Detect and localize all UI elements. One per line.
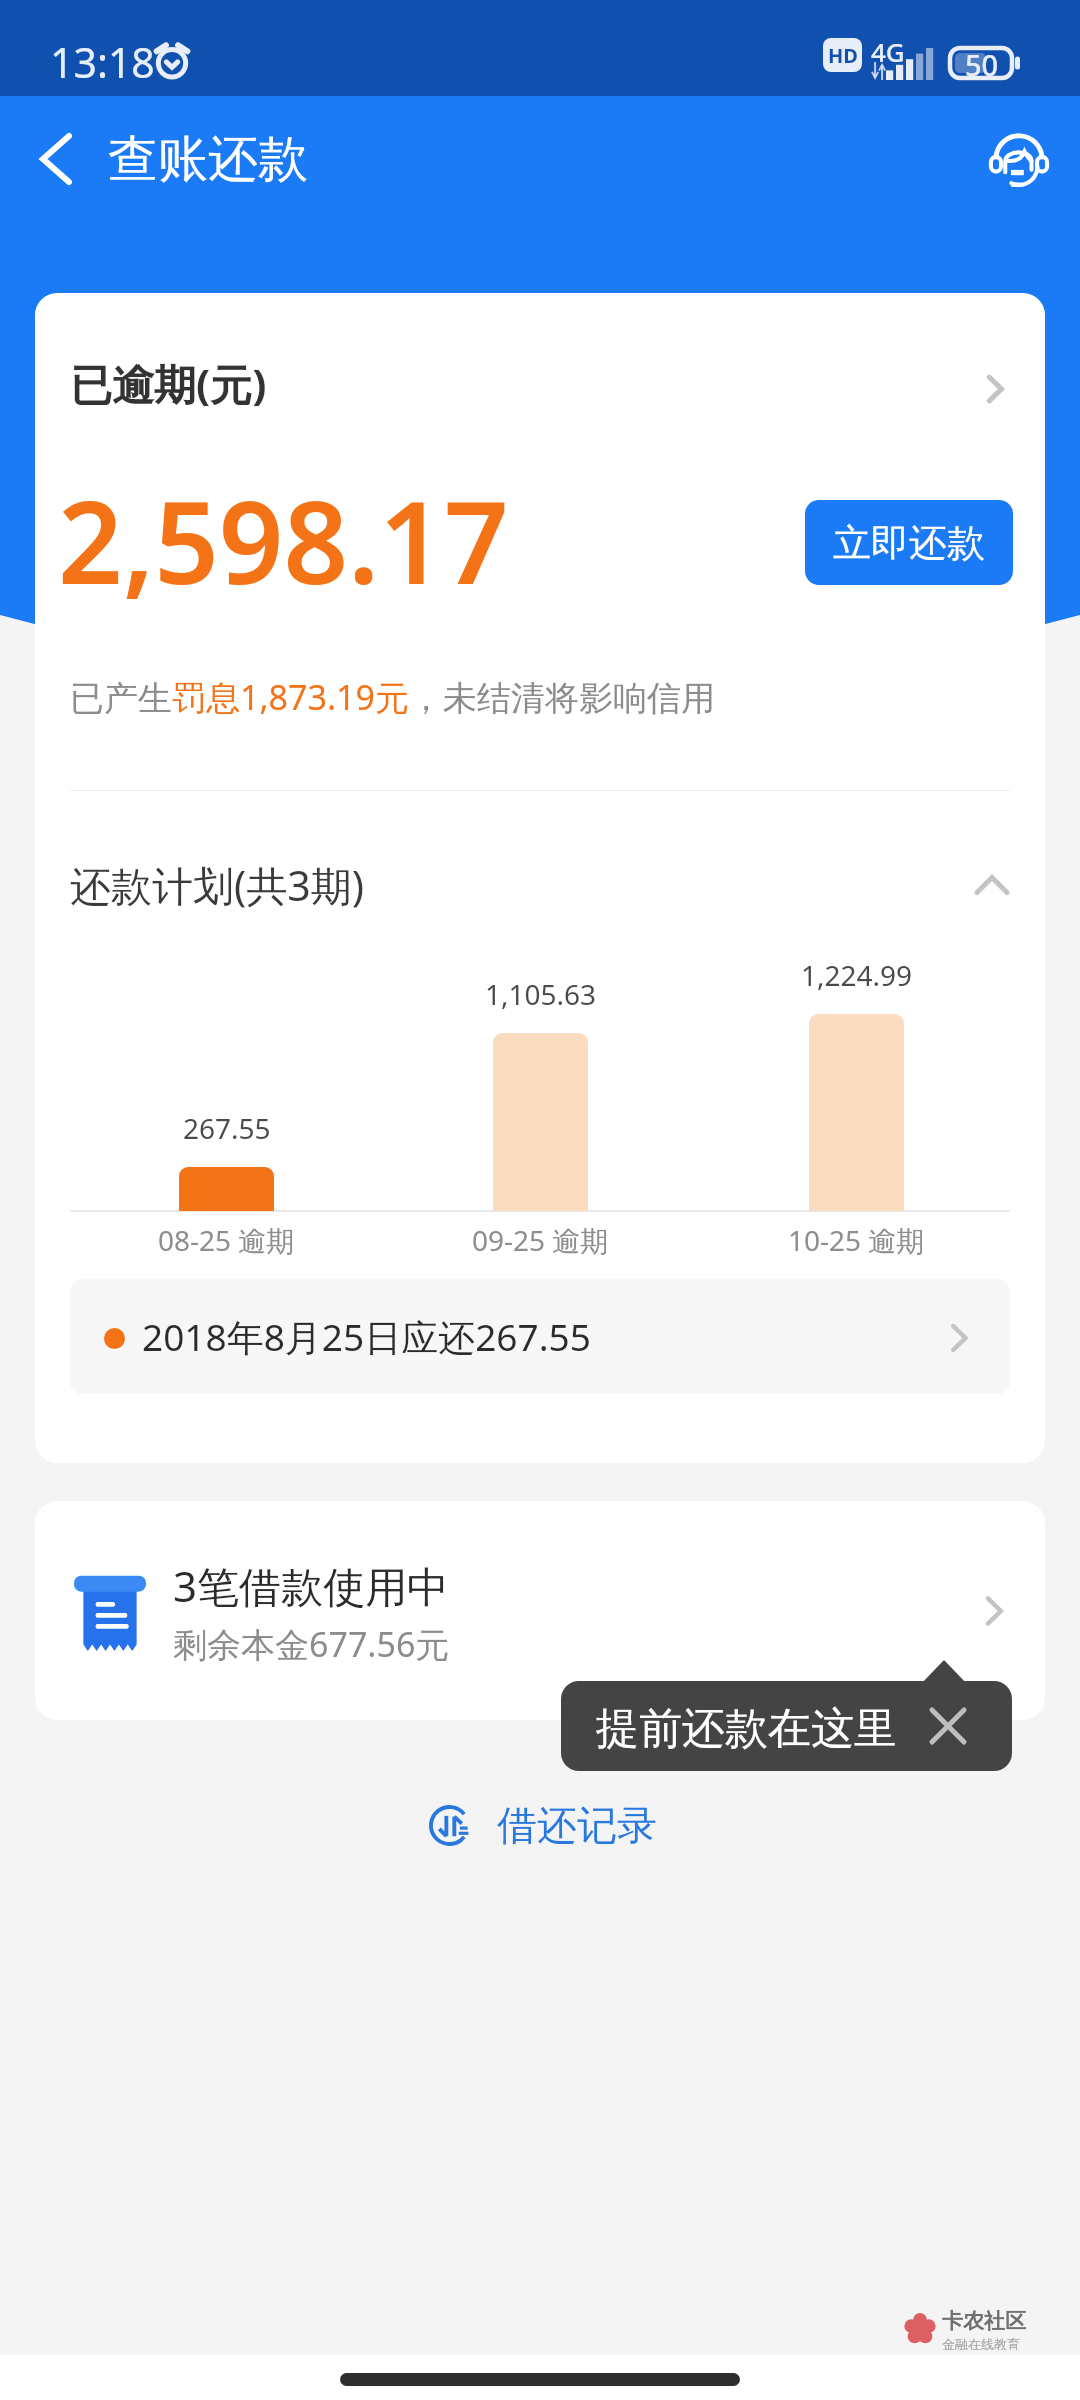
staticText: 立即还款	[833, 519, 985, 567]
staticText: 金融在线教育	[942, 2336, 1020, 2350]
button[interactable]: 立即还款	[805, 500, 1013, 585]
button[interactable]: 借还记录	[429, 1795, 659, 1855]
button[interactable]: Close	[923, 1701, 973, 1751]
staticText: HD	[828, 42, 858, 69]
staticText: 提前还款在这里	[596, 1702, 897, 1756]
button[interactable]: Back	[20, 114, 110, 204]
staticText: 3笔借款使用中	[173, 1557, 450, 1614]
staticText: 1,224.99	[801, 956, 913, 994]
staticText: 剩余本金677.56元	[173, 1621, 450, 1667]
staticText: 已产生罚息1,873.19元，未结清将影响信用	[70, 674, 715, 720]
staticText: 卡农社区	[942, 2308, 1026, 2334]
button[interactable]: Customer service	[987, 130, 1051, 194]
staticText: 09-25 逾期	[472, 1221, 609, 1259]
staticText: 查账还款	[108, 128, 308, 191]
staticText: 50	[965, 45, 999, 84]
button[interactable]: 已逾期(元)	[35, 293, 1045, 423]
staticText: 1,105.63	[485, 975, 597, 1013]
button[interactable]: 3笔借款使用中	[35, 1501, 1045, 1720]
staticText: 借还记录	[497, 1800, 657, 1850]
staticText: 267.55	[183, 1109, 271, 1147]
button[interactable]: 还款计划(共3期)	[35, 830, 1045, 940]
staticText: 10-25 逾期	[788, 1221, 925, 1259]
staticText: 08-25 逾期	[158, 1221, 295, 1259]
staticText: 还款计划(共3期)	[70, 857, 365, 913]
button[interactable]: 2018年8月25日应还267.55	[70, 1279, 1010, 1394]
staticText: 2,598.17	[58, 463, 509, 617]
staticText: 已逾期(元)	[70, 355, 267, 412]
staticText: 4G	[871, 34, 905, 69]
staticText: 2018年8月25日应还267.55	[142, 1311, 591, 1362]
staticText: 13:18	[50, 34, 155, 90]
